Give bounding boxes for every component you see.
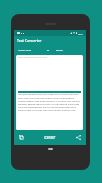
staticText: 9:41	[78, 32, 83, 35]
button[interactable]: Share	[75, 134, 82, 141]
button[interactable]: CONVERT	[41, 134, 59, 141]
staticText: CONVERT	[44, 136, 56, 139]
staticText: to	[47, 49, 50, 52]
button[interactable]: Morse Code	[18, 48, 31, 53]
staticText: THE QUICK BROWN FOX JUMPS OVER THE LAZY …	[18, 93, 81, 111]
button[interactable]: Copy	[18, 134, 25, 141]
staticText: Binary	[56, 49, 63, 52]
staticText: Text Converter	[17, 38, 42, 43]
staticText: Type or paste your text here	[18, 56, 47, 59]
staticText: Morse Code	[18, 49, 31, 52]
button[interactable]: Binary	[56, 48, 63, 53]
